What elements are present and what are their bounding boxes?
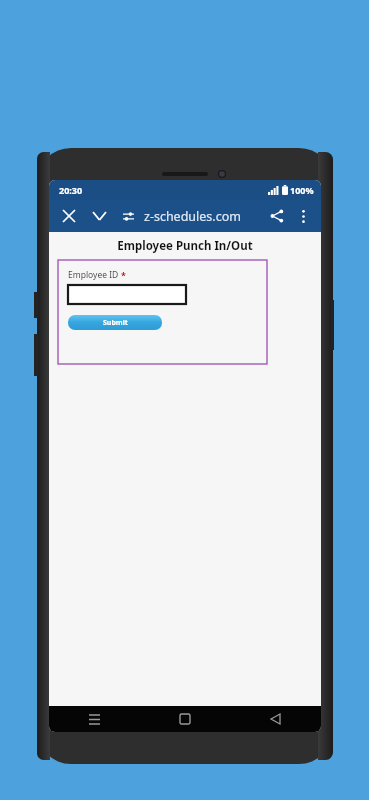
button[interactable]	[68, 285, 186, 304]
staticText: *	[121, 269, 126, 281]
button[interactable]: More options	[291, 204, 315, 228]
button[interactable]: Back	[230, 706, 321, 732]
button[interactable]: Submit	[68, 315, 162, 330]
button[interactable]: Share	[265, 204, 289, 228]
button[interactable]: Home	[139, 706, 230, 732]
button[interactable]: Recent apps	[49, 706, 139, 732]
button[interactable]: Page info	[117, 205, 139, 227]
staticText: Employee ID	[68, 269, 121, 281]
button[interactable]: Close	[57, 204, 81, 228]
staticText: Submit	[103, 318, 128, 328]
staticText: 100%	[290, 184, 314, 196]
staticText: Employee Punch In/Out	[49, 238, 321, 254]
staticText: 20:30	[59, 184, 83, 196]
staticText: z-schedules.com	[144, 208, 265, 225]
button[interactable]: Expand	[87, 204, 111, 228]
